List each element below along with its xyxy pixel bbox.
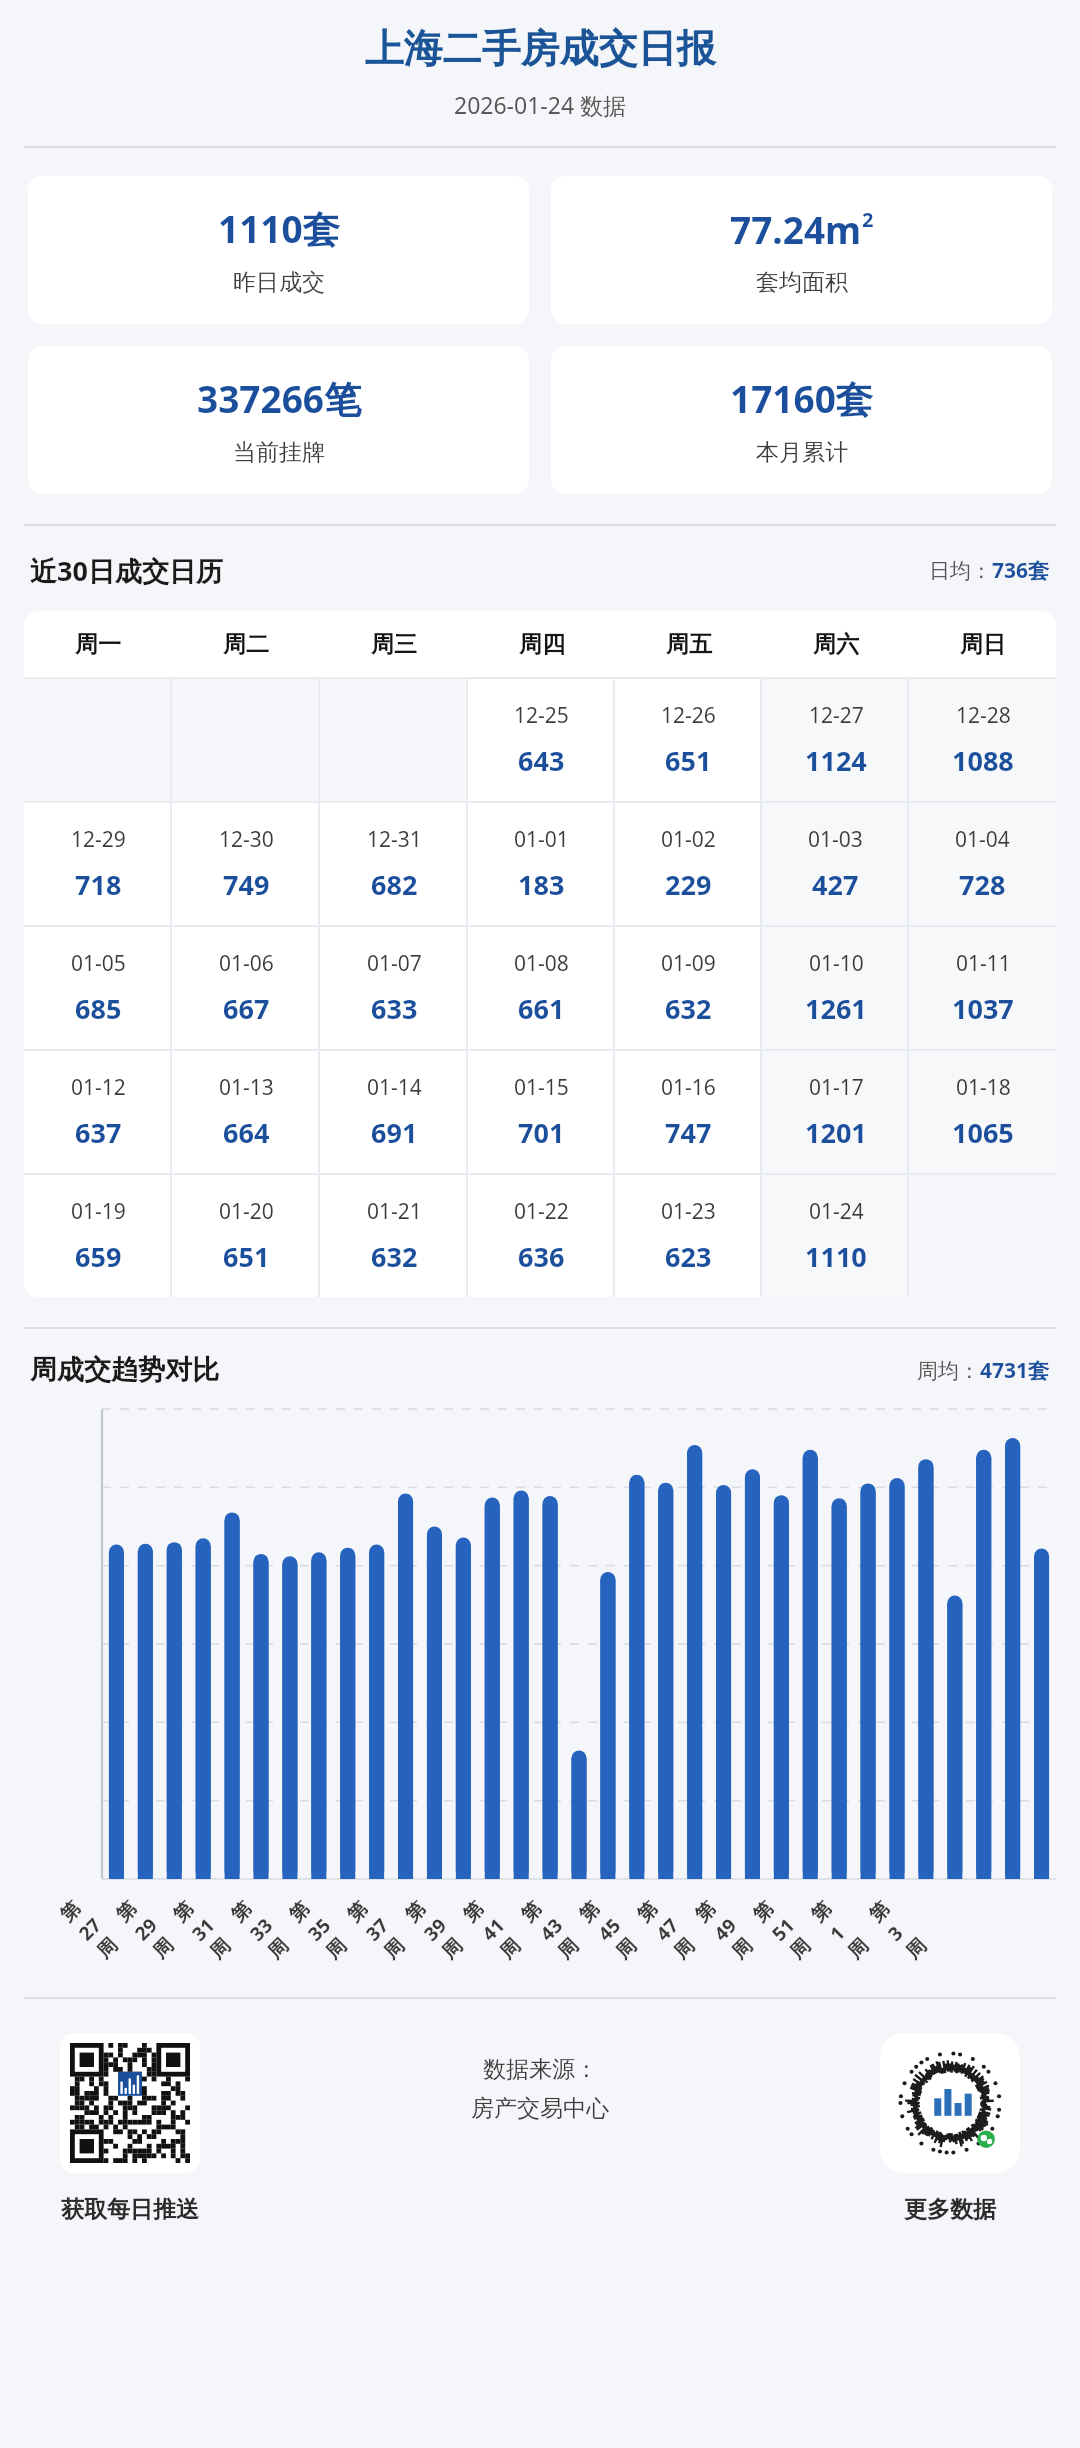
button[interactable]: 01-14 <box>320 1051 468 1173</box>
staticText: 周二 <box>223 630 269 659</box>
staticText: 套均面积 <box>756 268 848 297</box>
staticText: 01-01 <box>514 825 569 854</box>
staticText: 427 <box>812 866 859 903</box>
staticText: 637 <box>75 1114 122 1151</box>
staticText: 第33周 <box>226 1890 301 1964</box>
staticText: 1037 <box>952 990 1014 1027</box>
button[interactable]: 12-27 <box>762 679 909 801</box>
staticText: 685 <box>75 990 122 1027</box>
button[interactable]: 01-02 <box>615 803 762 925</box>
staticText: 682 <box>371 866 418 903</box>
staticText: 第27周 <box>55 1890 129 1964</box>
staticText: 749 <box>223 866 270 903</box>
staticText: 691 <box>371 1114 418 1151</box>
button[interactable]: 01-12 <box>24 1051 172 1173</box>
staticText: 数据来源： <box>483 2055 598 2084</box>
button[interactable]: 01-07 <box>320 927 468 1049</box>
staticText: 01-23 <box>661 1197 716 1226</box>
staticText: 01-09 <box>661 949 716 978</box>
button[interactable]: 01-04 <box>909 803 1056 925</box>
button[interactable]: 77.24m <box>551 176 1052 324</box>
staticText: 01-19 <box>71 1197 126 1226</box>
button[interactable]: 1110套 <box>28 176 529 324</box>
staticText: 01-03 <box>808 825 863 854</box>
staticText: 01-22 <box>514 1197 569 1226</box>
staticText: 659 <box>75 1238 122 1275</box>
button[interactable]: 01-16 <box>615 1051 762 1173</box>
button[interactable]: 01-11 <box>909 927 1056 1049</box>
staticText: 第35周 <box>284 1890 359 1964</box>
button[interactable]: 01-17 <box>762 1051 909 1173</box>
staticText: 664 <box>223 1114 270 1151</box>
staticText: 747 <box>665 1114 712 1151</box>
button[interactable]: 12-29 <box>24 803 172 925</box>
button[interactable]: 更多数据二维码 <box>888 2041 1012 2165</box>
button[interactable]: 01-05 <box>24 927 172 1049</box>
staticText: 183 <box>518 866 565 903</box>
staticText: 1124 <box>805 742 867 779</box>
staticText: 周六 <box>813 630 859 659</box>
staticText: 01-24 <box>809 1197 864 1226</box>
staticText: 周日 <box>960 630 1006 659</box>
staticText: 728 <box>959 866 1006 903</box>
button[interactable]: 01-15 <box>468 1051 615 1173</box>
staticText: 01-11 <box>956 949 1011 978</box>
staticText: 01-15 <box>514 1073 569 1102</box>
staticText: 661 <box>518 990 565 1027</box>
staticText: 718 <box>75 866 122 903</box>
staticText: 636 <box>518 1238 565 1275</box>
button[interactable]: 12-30 <box>172 803 320 925</box>
button[interactable]: 337266笔 <box>28 346 529 494</box>
button[interactable]: 12-25 <box>468 679 615 801</box>
button[interactable]: 12-31 <box>320 803 468 925</box>
staticText: 01-06 <box>219 949 274 978</box>
staticText: 第47周 <box>632 1890 707 1964</box>
staticText: 第45周 <box>574 1890 649 1964</box>
button[interactable]: 01-18 <box>909 1051 1056 1173</box>
staticText: 上海二手房成交日报 <box>0 24 1080 73</box>
staticText: 昨日成交 <box>233 268 325 297</box>
button[interactable]: 01-22 <box>468 1175 615 1297</box>
button[interactable]: 12-26 <box>615 679 762 801</box>
staticText: 1065 <box>952 1114 1014 1151</box>
button[interactable]: 01-20 <box>172 1175 320 1297</box>
staticText: 01-18 <box>956 1073 1011 1102</box>
staticText: 01-21 <box>367 1197 422 1226</box>
button[interactable]: 01-10 <box>762 927 909 1049</box>
button[interactable]: 获取每日推送二维码 <box>70 2043 190 2163</box>
button[interactable]: 01-13 <box>172 1051 320 1173</box>
staticText: 01-14 <box>367 1073 422 1102</box>
staticText: 01-16 <box>661 1073 716 1102</box>
button[interactable]: 01-19 <box>24 1175 172 1297</box>
staticText: 近30日成交日历 <box>30 552 223 589</box>
staticText: 01-12 <box>71 1073 126 1102</box>
button[interactable]: 01-24 <box>762 1175 909 1297</box>
button[interactable]: 01-09 <box>615 927 762 1049</box>
button[interactable]: 01-23 <box>615 1175 762 1297</box>
button[interactable]: 01-06 <box>172 927 320 1049</box>
staticText: 17160套 <box>730 373 873 424</box>
button[interactable]: 01-03 <box>762 803 909 925</box>
staticText: 第29周 <box>111 1890 185 1964</box>
button[interactable]: 01-21 <box>320 1175 468 1297</box>
staticText: 01-17 <box>809 1073 864 1102</box>
button[interactable]: 17160套 <box>551 346 1052 494</box>
staticText: 643 <box>518 742 565 779</box>
staticText: 736套 <box>992 556 1050 585</box>
button[interactable]: 12-28 <box>909 679 1056 801</box>
staticText: 1088 <box>952 742 1014 779</box>
button[interactable]: 01-08 <box>468 927 615 1049</box>
staticText: 房产交易中心 <box>471 2094 609 2123</box>
staticText: 第51周 <box>748 1890 823 1964</box>
button[interactable]: 01-01 <box>468 803 615 925</box>
staticText: 623 <box>665 1238 712 1275</box>
